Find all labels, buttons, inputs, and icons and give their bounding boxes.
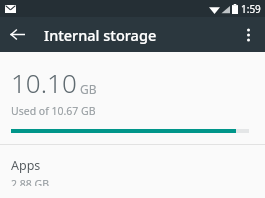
button[interactable]: Navigate up — [0, 17, 35, 52]
button[interactable]: More options — [232, 18, 265, 51]
staticText: 2.88 GB — [11, 177, 50, 186]
staticText: 1:59 — [241, 2, 261, 16]
staticText: GB — [80, 81, 97, 97]
staticText: Used of 10.67 GB — [11, 104, 96, 118]
button[interactable]: Apps — [0, 145, 265, 198]
staticText: 10.10 — [11, 65, 77, 100]
staticText: Internal storage — [44, 25, 232, 45]
staticText: Apps — [11, 157, 41, 174]
